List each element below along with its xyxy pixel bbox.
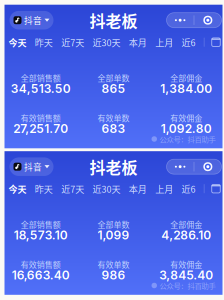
staticText: 683 [101,121,125,136]
staticText: 昨天 [35,182,53,195]
staticText: 抖老板 [89,155,137,178]
staticText: 今天 [8,36,26,49]
button[interactable]: 今天 [8,36,26,49]
staticText: 全部销售额 [21,72,61,83]
staticText: 有效佣金 [170,258,202,270]
button[interactable]: 本月 [129,36,147,49]
button[interactable]: 昨天 [35,182,53,195]
button[interactable]: 近7天 [61,36,84,49]
staticText: 抖老板 [89,9,137,32]
staticText: 公众号：抖百助手 [159,280,215,291]
staticText: 有效销售额 [21,258,61,270]
staticText: 16,663.40 [12,268,70,282]
staticText: 全部佣金 [170,218,202,230]
button[interactable]: 近7天 [61,182,84,195]
button[interactable]: 近6 [181,36,195,49]
button[interactable]: 上月 [155,36,173,49]
staticText: 865 [101,81,125,96]
button[interactable]: 抖音 [9,157,53,176]
staticText: 公众号：抖百助手 [159,134,215,144]
staticText: 1,092.80 [161,121,212,136]
staticText: 1,099 [97,228,129,242]
button[interactable]: 近30天 [92,36,120,49]
staticText: 986 [101,268,125,282]
staticText: 全部单数 [97,72,129,83]
staticText: 昨天 [35,36,53,49]
staticText: 近6 [181,36,195,49]
staticText: 全部佣金 [170,72,202,83]
staticText: 34,513.50 [11,81,71,96]
button[interactable]: 上月 [155,182,173,195]
staticText: 有效单数 [97,258,129,270]
staticText: 3,845.40 [159,268,213,282]
staticText: 近30天 [92,36,120,49]
staticText: 本月 [129,182,147,195]
staticText: 近30天 [92,182,120,195]
staticText: 近7天 [61,182,84,195]
staticText: 抖音 [24,14,42,26]
staticText: 抖音 [24,160,42,173]
staticText: 上月 [155,182,173,195]
button[interactable]: 近30天 [92,182,120,195]
staticText: 有效单数 [97,112,129,123]
staticText: 全部单数 [97,218,129,230]
staticText: 27,251.70 [13,121,68,136]
button[interactable]: 抖音 [9,11,53,29]
staticText: 近7天 [61,36,84,49]
button[interactable]: 今天 [8,182,26,195]
button[interactable]: More [166,13,221,28]
button[interactable]: 昨天 [35,36,53,49]
button[interactable]: Pick date [211,38,220,47]
button[interactable]: 近6 [181,182,195,195]
staticText: 近6 [181,182,195,195]
staticText: 有效佣金 [170,112,202,123]
staticText: 今天 [8,182,26,195]
staticText: 本月 [129,36,147,49]
staticText: 4,286.10 [161,228,211,242]
staticText: 全部销售额 [21,218,61,230]
staticText: 1,384.00 [160,81,212,96]
button[interactable]: 本月 [129,182,147,195]
staticText: 有效销售额 [21,112,61,123]
button[interactable]: Pick date [211,184,220,193]
staticText: 18,573.10 [14,228,68,242]
button[interactable]: More [166,159,221,174]
staticText: 上月 [155,36,173,49]
